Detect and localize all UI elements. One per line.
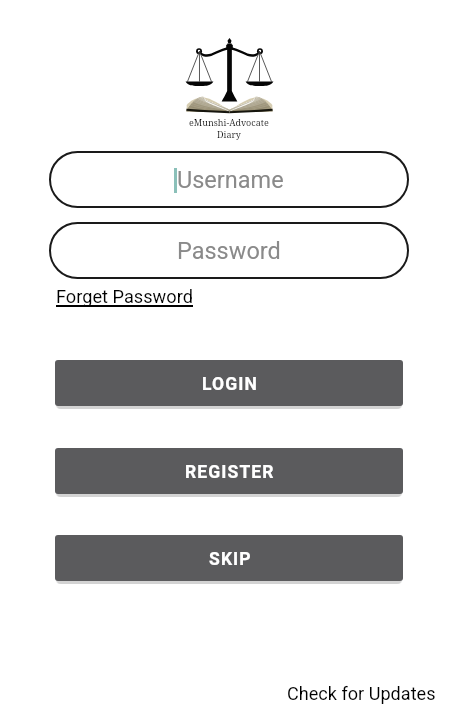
staticText: Check for Updates [287, 683, 436, 704]
button[interactable]: REGISTER [55, 448, 403, 494]
button[interactable]: Username [49, 151, 409, 208]
staticText: Username [177, 166, 284, 194]
staticText: REGISTER [185, 462, 275, 483]
button[interactable]: Password [49, 222, 409, 279]
staticText: Password [177, 237, 281, 265]
staticText: SKIP [209, 549, 252, 570]
button[interactable]: Forget Password [56, 286, 193, 309]
staticText: eMunshi-Advocate [189, 116, 269, 128]
button[interactable]: SKIP [55, 535, 403, 581]
staticText: LOGIN [202, 374, 258, 395]
other: eMunshi Advocate Diary logo [186, 31, 273, 115]
button[interactable]: Check for Updates [287, 683, 436, 704]
button[interactable]: LOGIN [55, 360, 403, 406]
staticText: Forget Password [56, 286, 193, 307]
staticText: Diary [217, 128, 241, 140]
